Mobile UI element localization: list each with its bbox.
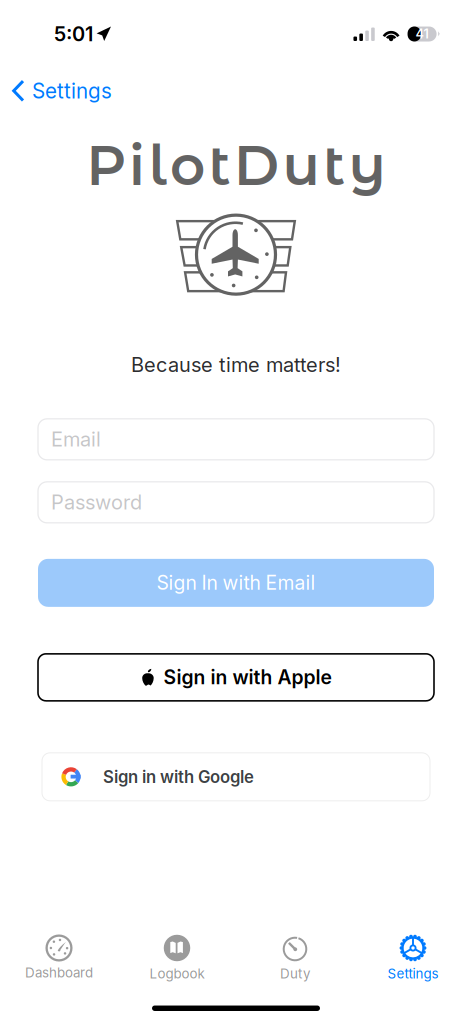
button[interactable]: Sign In with Email [38, 559, 434, 607]
staticText: Settings [32, 78, 112, 103]
staticText: 5:01 [54, 22, 93, 46]
staticText: 41 [416, 26, 429, 42]
staticText: Duty [280, 965, 310, 982]
button[interactable]: Sign in with Apple [38, 654, 434, 701]
button[interactable]: Sign in with Google [42, 753, 430, 801]
button[interactable]: Dashboard [0, 928, 118, 985]
staticText: Password [51, 490, 142, 514]
button[interactable]: Settings [354, 927, 472, 986]
staticText: Settings [387, 965, 438, 982]
staticText: Logbook [149, 965, 204, 982]
staticText: Sign In with Email [156, 571, 315, 594]
staticText: PilotDuty [86, 132, 385, 199]
button[interactable]: Settings [0, 69, 124, 106]
staticText: Dashboard [25, 964, 93, 981]
staticText: Because time matters! [131, 353, 341, 377]
staticText: Email [51, 427, 101, 451]
staticText: Sign in with Google [103, 767, 254, 787]
staticText: Sign in with Apple [163, 666, 331, 689]
button[interactable]: Logbook [118, 927, 236, 986]
button[interactable]: Duty [236, 927, 354, 986]
